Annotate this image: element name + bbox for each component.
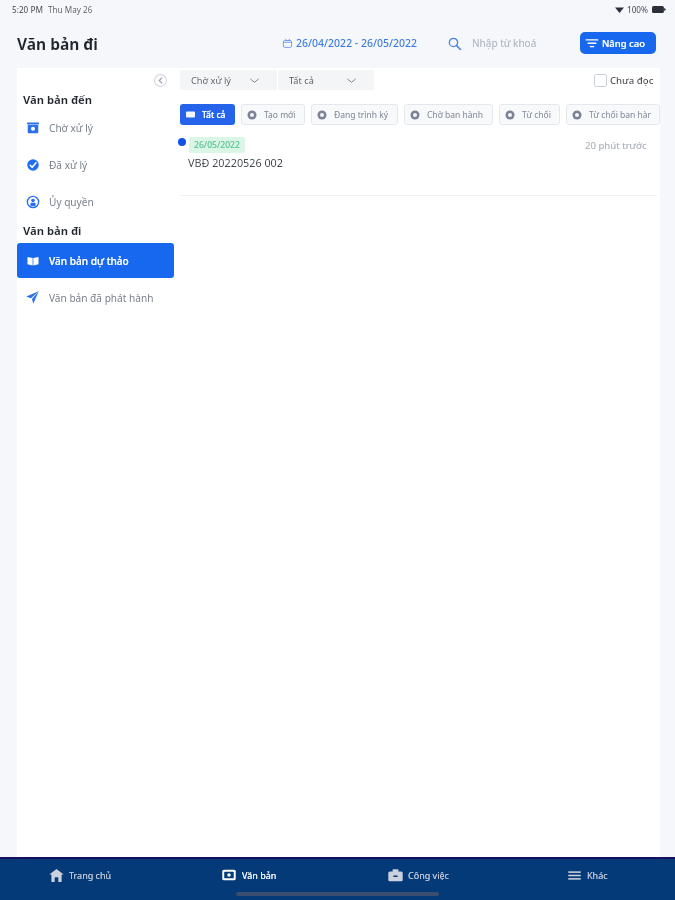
button[interactable]: Công việc bbox=[337, 859, 506, 890]
staticText: Đã xử lý bbox=[49, 158, 88, 172]
button[interactable]: 26/05/2022 bbox=[180, 137, 660, 196]
button[interactable]: Chưa đọc bbox=[592, 72, 656, 89]
staticText: 26/04/2022 - 26/05/2022 bbox=[296, 36, 418, 50]
button[interactable]: Chờ xử lý bbox=[17, 110, 174, 145]
staticText: 5:20 PM bbox=[12, 4, 43, 15]
button[interactable]: Khác bbox=[506, 859, 675, 890]
staticText: Tất cả bbox=[289, 74, 314, 87]
button[interactable]: Đã xử lý bbox=[17, 147, 174, 182]
staticText: Văn bản đã phát hành bbox=[49, 291, 154, 305]
staticText: Chưa đọc bbox=[610, 74, 654, 87]
button[interactable]: Ủy quyền bbox=[17, 184, 174, 219]
button[interactable]: Văn bản dự thảo bbox=[17, 243, 174, 278]
staticText: Tạo mới bbox=[264, 109, 296, 121]
button[interactable]: Nâng cao bbox=[580, 32, 656, 54]
staticText: Nâng cao bbox=[602, 37, 646, 50]
button[interactable]: Tất cả bbox=[278, 70, 374, 90]
staticText: Văn bản đi bbox=[17, 33, 98, 54]
staticText: Khác bbox=[587, 869, 608, 881]
staticText: Chờ xử lý bbox=[49, 121, 93, 135]
staticText: 20 phút trước bbox=[585, 139, 647, 152]
staticText: VBĐ 20220526 002 bbox=[188, 155, 283, 170]
staticText: Trang chủ bbox=[69, 869, 112, 881]
staticText: Công việc bbox=[408, 869, 449, 881]
staticText: Văn bản đi bbox=[23, 223, 82, 238]
button[interactable]: Từ chối ban hành bbox=[566, 104, 660, 125]
button[interactable]: Từ chối bbox=[499, 104, 560, 125]
button[interactable]: Văn bản đã phát hành bbox=[17, 280, 174, 315]
staticText: Văn bản bbox=[242, 869, 277, 881]
staticText: Từ chối ban hành bbox=[589, 109, 651, 121]
staticText: Tất cả bbox=[202, 109, 226, 121]
staticText: Từ chối bbox=[522, 109, 551, 121]
button[interactable]: Văn bản bbox=[168, 859, 337, 890]
button[interactable]: Trang chủ bbox=[0, 859, 168, 890]
button[interactable]: 26/04/2022 - 26/05/2022 bbox=[279, 32, 422, 54]
staticText: Đang trình ký bbox=[334, 109, 389, 121]
staticText: Thu May 26 bbox=[48, 4, 93, 15]
button[interactable]: Nhập từ khoá bbox=[448, 32, 537, 54]
button[interactable]: Chờ xử lý bbox=[180, 70, 277, 90]
staticText: 26/05/2022 bbox=[194, 139, 240, 151]
staticText: Nhập từ khoá bbox=[472, 36, 537, 50]
staticText: Chờ xử lý bbox=[191, 74, 232, 87]
staticText: Văn bản đến bbox=[23, 92, 93, 107]
button[interactable]: Thu gọn danh sách bbox=[153, 73, 167, 87]
button[interactable]: Tất cả bbox=[180, 104, 235, 125]
staticText: 100% bbox=[627, 4, 649, 15]
button[interactable]: Chờ ban hành bbox=[404, 104, 493, 125]
staticText: Chờ ban hành bbox=[427, 109, 484, 121]
staticText: Ủy quyền bbox=[49, 195, 94, 209]
button[interactable]: Đang trình ký bbox=[311, 104, 398, 125]
button[interactable]: Tạo mới bbox=[241, 104, 305, 125]
staticText: Văn bản dự thảo bbox=[49, 254, 129, 268]
